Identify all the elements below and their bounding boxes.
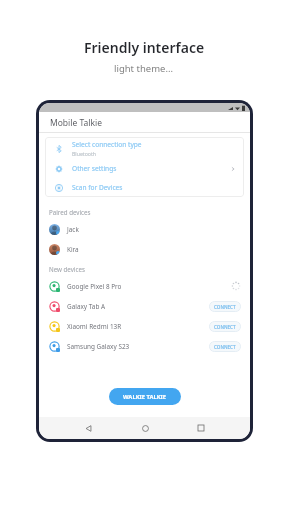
staticText: WALKIE TALKIE [123,393,167,401]
staticText: Scan for Devices [72,183,123,192]
button[interactable]: Home [137,420,153,436]
staticText: CONNECT [214,324,236,330]
staticText: Mobile Talkie [50,117,103,129]
staticText: Samsung Galaxy S23 [67,342,209,351]
button[interactable]: Recents [193,420,209,436]
button[interactable]: CONNECT [209,341,241,352]
button[interactable]: Select connection type [45,137,244,159]
other: Connecting [231,281,241,291]
button[interactable]: Scan for Devices [45,178,244,197]
staticText: light theme... [114,62,174,75]
button[interactable]: Jack [39,219,250,239]
button[interactable]: Kira [39,239,250,259]
staticText: Xiaomi Redmi 13R [67,322,209,331]
staticText: Kira [67,245,79,254]
button[interactable]: Xiaomi Redmi 13R [39,316,250,336]
staticText: Other settings [72,164,230,173]
staticText: Paired devices [49,208,91,216]
staticText: Galaxy Tab A [67,302,209,311]
button[interactable]: Back [80,420,96,436]
staticText: Select connection type [72,140,142,149]
staticText: New devices [49,265,85,273]
button[interactable]: Galaxy Tab A [39,296,250,316]
button[interactable]: Samsung Galaxy S23 [39,336,250,356]
button[interactable]: CONNECT [209,301,241,312]
staticText: Bluetooth [72,150,97,157]
staticText: Google Pixel 8 Pro [67,282,231,291]
button[interactable]: WALKIE TALKIE [109,388,181,405]
staticText: CONNECT [214,344,236,350]
staticText: Friendly interface [84,38,205,57]
staticText: CONNECT [214,304,236,310]
button[interactable]: Other settings [45,159,244,178]
button[interactable]: CONNECT [209,321,241,332]
button[interactable]: Google Pixel 8 Pro [39,276,250,296]
staticText: Jack [67,225,79,234]
